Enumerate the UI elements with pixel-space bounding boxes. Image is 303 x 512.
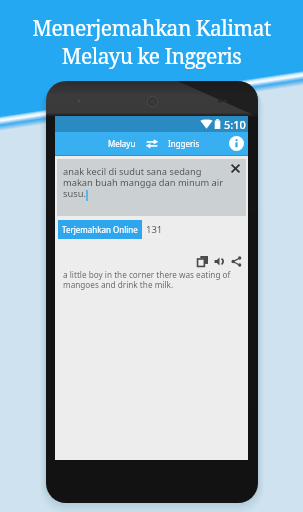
button[interactable]: Swap languages — [145, 137, 159, 150]
staticText: 131 — [146, 223, 163, 236]
staticText: Melayu — [108, 138, 136, 149]
staticText: a little boy in the corner there was eat… — [63, 269, 231, 291]
button[interactable]: Info — [229, 136, 244, 151]
button[interactable]: Speak — [214, 256, 225, 267]
button[interactable]: Melayu — [106, 138, 138, 149]
button[interactable]: Inggeris — [166, 138, 202, 149]
staticText: Menerjemahkan Kalimat Melayu ke Inggeris — [32, 14, 271, 70]
button[interactable]: Share — [231, 256, 242, 267]
button[interactable]: Terjemahkan Online — [58, 220, 142, 239]
staticText: Inggeris — [168, 138, 200, 149]
button[interactable]: Clear text — [230, 163, 241, 174]
staticText: Terjemahkan Online — [62, 224, 138, 235]
staticText: 5:10 — [224, 117, 246, 132]
staticText: anak kecil di sudut sana sedang makan bu… — [63, 165, 224, 200]
button[interactable]: Copy — [197, 256, 208, 267]
